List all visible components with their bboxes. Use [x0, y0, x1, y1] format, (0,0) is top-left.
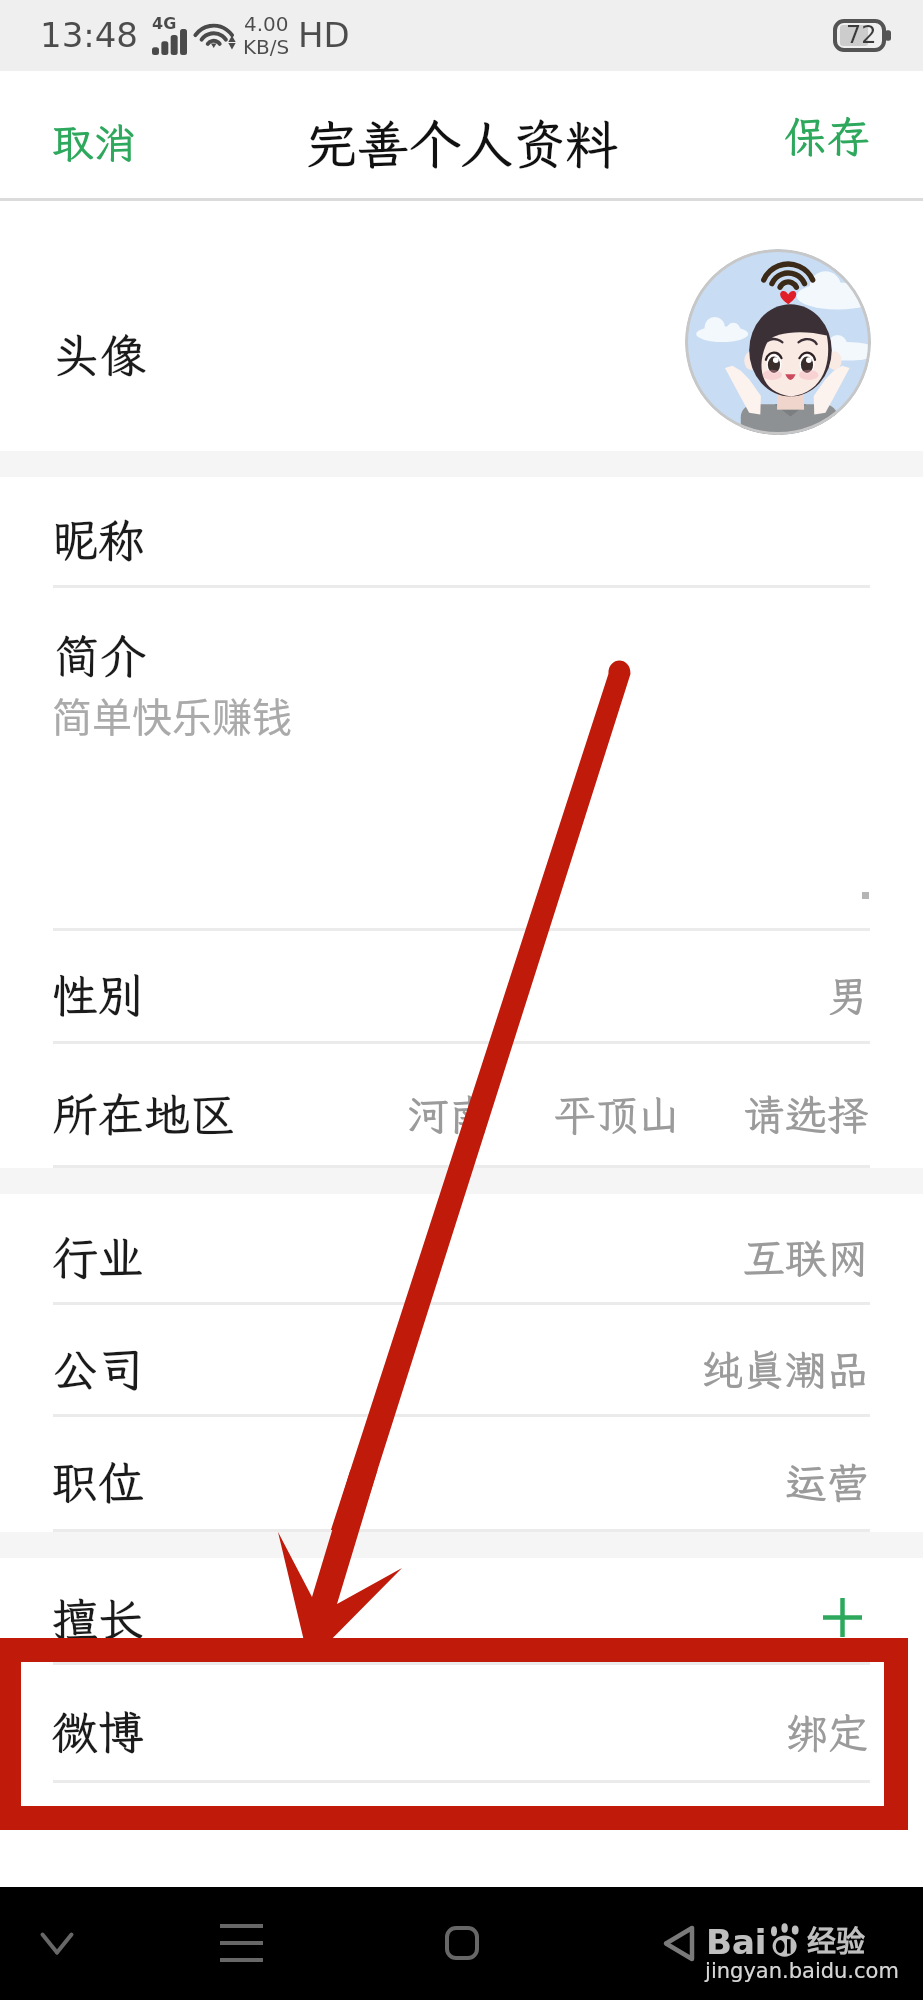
- button[interactable]: 擅长: [0, 1558, 923, 1665]
- staticText: 河南: [407, 1087, 492, 1142]
- button[interactable]: 菜单: [191, 1893, 291, 1993]
- staticText: 运营: [785, 1455, 870, 1510]
- staticText: 擅长: [52, 1589, 144, 1650]
- button[interactable]: 保存: [738, 80, 923, 193]
- staticText: 取消: [52, 115, 137, 170]
- button[interactable]: 公司: [0, 1305, 923, 1417]
- button[interactable]: 返回: [664, 1926, 694, 1961]
- button[interactable]: 取消: [0, 81, 183, 192]
- staticText: 纯真潮品: [701, 1342, 870, 1397]
- button[interactable]: 头像: [0, 201, 923, 451]
- staticText: 请选择: [743, 1087, 870, 1142]
- staticText: 微博: [52, 1702, 144, 1763]
- staticText: KB/S: [243, 35, 290, 58]
- button[interactable]: 添加擅长: [823, 1598, 862, 1637]
- staticText: 互联网: [743, 1230, 870, 1285]
- staticText: Bai: [706, 1922, 767, 1962]
- staticText: 4.00: [244, 12, 289, 35]
- staticText: 性别: [52, 965, 144, 1026]
- staticText: 所在地区: [52, 1084, 236, 1145]
- button[interactable]: 主页: [412, 1893, 512, 1993]
- button[interactable]: 简介: [0, 588, 923, 931]
- button[interactable]: 收起键盘: [7, 1893, 107, 1993]
- staticText: 平顶山: [554, 1087, 681, 1142]
- button[interactable]: 昵称: [0, 477, 923, 588]
- staticText: jingyan.baidu.com: [705, 1959, 899, 1983]
- staticText: 72: [846, 21, 877, 49]
- button[interactable]: 所在地区: [0, 1044, 923, 1168]
- staticText: 男: [827, 968, 870, 1023]
- staticText: 行业: [52, 1227, 144, 1288]
- staticText: 经验: [807, 1918, 866, 1960]
- staticText: 头像: [54, 325, 146, 386]
- staticText: 保存: [784, 108, 870, 165]
- staticText: 完善个人资料: [305, 109, 618, 177]
- button[interactable]: 职位: [0, 1417, 923, 1532]
- button[interactable]: 性别: [0, 931, 923, 1044]
- staticText: 绑定: [785, 1705, 870, 1760]
- button[interactable]: 微博: [0, 1665, 923, 1783]
- staticText: 公司: [52, 1339, 144, 1400]
- button[interactable]: 行业: [0, 1194, 923, 1305]
- staticText: 简单快乐赚钱: [52, 686, 292, 744]
- staticText: 昵称: [52, 510, 144, 571]
- staticText: 职位: [52, 1452, 144, 1513]
- staticText: 简介: [54, 626, 146, 687]
- staticText: 4G: [152, 14, 177, 33]
- staticText: 13:48: [40, 15, 138, 55]
- staticText: HD: [298, 15, 350, 55]
